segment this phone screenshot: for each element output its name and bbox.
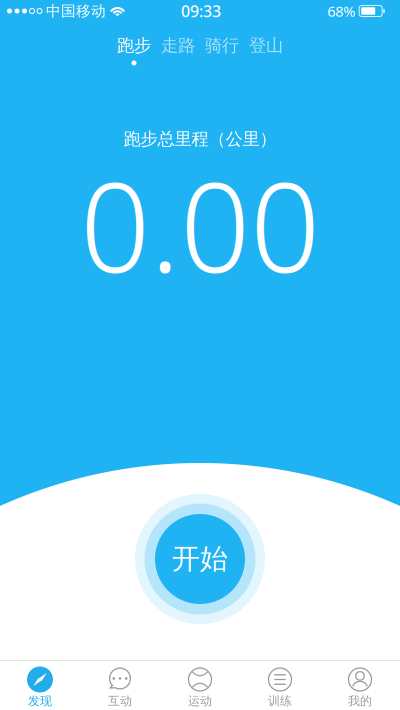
staticText: 我的 (348, 694, 372, 708)
button[interactable]: 训练 (240, 660, 320, 710)
button[interactable]: 跑步 (114, 36, 154, 65)
button[interactable]: 互动 (80, 660, 160, 710)
staticText: 09:33 (181, 0, 221, 22)
button[interactable]: 骑行 (202, 36, 242, 65)
staticText: 中国移动 (46, 2, 106, 20)
staticText: 68% (327, 1, 355, 21)
button[interactable]: 运动 (160, 660, 240, 710)
button[interactable]: 登山 (246, 36, 286, 65)
button[interactable]: 发现 (0, 660, 80, 710)
button[interactable]: 开始 (135, 494, 265, 624)
button[interactable]: 走路 (158, 36, 198, 65)
staticText: 运动 (188, 694, 212, 708)
staticText: 登山 (249, 35, 283, 56)
staticText: 开始 (172, 542, 228, 576)
staticText: 跑步总里程（公里） (123, 128, 276, 150)
staticText: 训练 (268, 694, 292, 708)
staticText: 互动 (108, 694, 132, 708)
staticText: 0.00 (80, 144, 320, 306)
staticText: 骑行 (205, 35, 239, 56)
staticText: 发现 (28, 694, 52, 708)
button[interactable]: 我的 (320, 660, 400, 710)
staticText: 走路 (161, 35, 195, 56)
staticText: 跑步 (117, 35, 151, 56)
